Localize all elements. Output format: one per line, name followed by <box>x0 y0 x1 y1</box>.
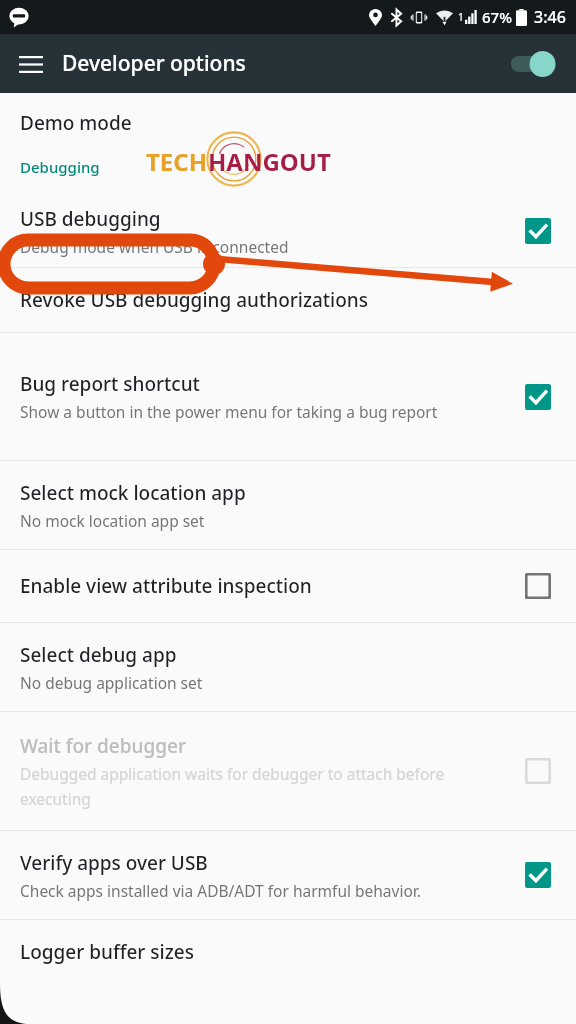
staticText: 67% <box>482 7 512 27</box>
button[interactable]: Demo mode <box>0 93 576 139</box>
staticText: Enable view attribute inspection <box>20 573 312 599</box>
button[interactable]: Checked <box>518 211 558 251</box>
button[interactable]: Revoke USB debugging authorizations <box>0 268 576 332</box>
staticText: Wait for debugger <box>20 733 186 759</box>
staticText: Verify apps over USB <box>20 850 208 876</box>
staticText: No debug application set <box>20 672 203 693</box>
staticText: Developer options <box>62 49 246 78</box>
staticText: Debugged application waits for debugger … <box>20 763 506 810</box>
button[interactable]: Unchecked <box>518 566 558 606</box>
button[interactable]: Open navigation menu <box>16 49 46 79</box>
button[interactable]: Select debug app <box>0 623 576 711</box>
staticText: Show a button in the power menu for taki… <box>20 401 438 422</box>
staticText: No mock location app set <box>20 510 205 531</box>
button[interactable]: Enable view attribute inspection <box>0 550 576 622</box>
staticText: Debugging <box>20 157 100 177</box>
staticText: Debug mode when USB is connected <box>20 236 289 257</box>
button[interactable]: Logger buffer sizes <box>0 920 576 984</box>
button[interactable]: Checked <box>518 377 558 417</box>
button: Wait for debugger <box>0 712 576 830</box>
staticText: USB debugging <box>20 206 161 232</box>
button[interactable]: Debugging <box>0 139 576 195</box>
button[interactable]: Verify apps over USB <box>0 831 576 919</box>
staticText: Bug report shortcut <box>20 371 200 397</box>
button[interactable]: Toggle developer options <box>506 47 558 81</box>
staticText: 1 <box>458 10 464 24</box>
staticText: Demo mode <box>20 110 132 136</box>
staticText: Revoke USB debugging authorizations <box>20 287 369 313</box>
button: Unchecked <box>518 751 558 791</box>
button[interactable]: Checked <box>518 855 558 895</box>
button[interactable]: USB debugging <box>0 195 576 267</box>
button[interactable]: Select mock location app <box>0 461 576 549</box>
staticText: Select mock location app <box>20 480 246 506</box>
button[interactable]: Bug report shortcut <box>0 333 576 460</box>
staticText: HANGOUT <box>208 145 331 178</box>
staticText: 3:46 <box>534 6 566 28</box>
staticText: Check apps installed via ADB/ADT for har… <box>20 880 421 901</box>
staticText: Logger buffer sizes <box>20 939 194 965</box>
staticText: Select debug app <box>20 642 177 668</box>
staticText: TECH <box>146 145 208 178</box>
